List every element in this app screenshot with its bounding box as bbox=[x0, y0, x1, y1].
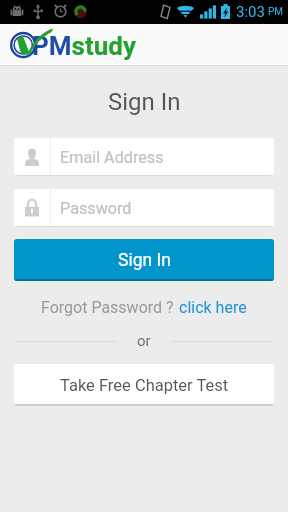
staticText: Take Free Chapter Test bbox=[60, 376, 229, 395]
staticText: Password bbox=[60, 199, 132, 218]
staticText: or bbox=[137, 332, 151, 350]
staticText: Sign In bbox=[118, 250, 171, 271]
staticText: PM bbox=[268, 6, 284, 18]
staticText: PMstudy bbox=[32, 31, 137, 61]
button[interactable]: click here bbox=[179, 298, 247, 317]
staticText: Sign In bbox=[108, 88, 181, 116]
button[interactable]: Email Address bbox=[14, 138, 274, 176]
staticText: click here bbox=[179, 298, 247, 317]
button[interactable]: Sign In bbox=[14, 239, 274, 281]
button[interactable]: Take Free Chapter Test bbox=[14, 364, 274, 406]
staticText: 3:03 bbox=[236, 3, 265, 21]
staticText: Email Address bbox=[60, 148, 164, 167]
button[interactable]: Password bbox=[14, 189, 274, 227]
staticText: Forgot Password ? bbox=[41, 298, 174, 317]
